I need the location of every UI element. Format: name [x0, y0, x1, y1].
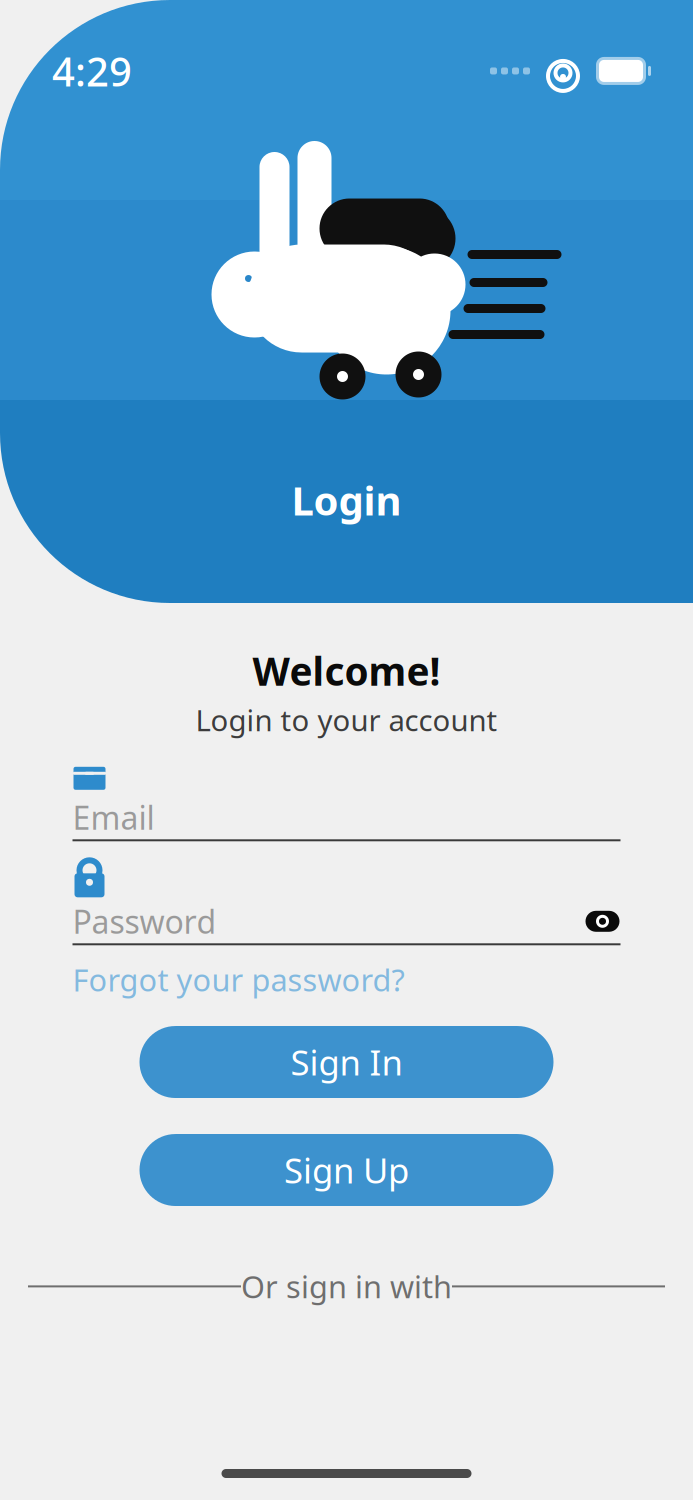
staticText: Login to your account: [195, 700, 497, 739]
staticText: Sign In: [290, 1039, 402, 1085]
staticText: Or sign in with: [241, 1266, 452, 1307]
button[interactable]: Sign In: [139, 1026, 553, 1098]
staticText: Forgot your password?: [72, 959, 404, 1000]
staticText: Password: [72, 900, 216, 943]
staticText: Email: [72, 796, 154, 839]
button[interactable]: Email: [72, 763, 620, 841]
staticText: Sign Up: [284, 1147, 409, 1193]
staticText: Welcome!: [252, 645, 440, 696]
button[interactable]: Forgot your password?: [72, 959, 404, 1000]
staticText: Login: [291, 473, 401, 527]
staticText: 4:29: [52, 44, 132, 97]
button[interactable]: Password: [72, 861, 620, 945]
button[interactable]: Sign Up: [139, 1134, 553, 1206]
